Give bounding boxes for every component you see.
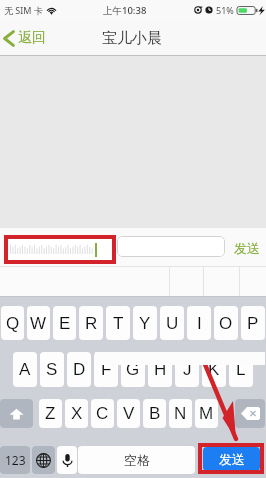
button[interactable]: 空格 bbox=[78, 446, 195, 474]
staticText: H bbox=[154, 360, 167, 379]
staticText: B bbox=[149, 404, 161, 423]
button[interactable]: D bbox=[67, 352, 91, 387]
button[interactable]: G bbox=[121, 352, 145, 387]
staticText: V bbox=[123, 404, 135, 423]
button[interactable]: B bbox=[143, 399, 166, 428]
staticText: 51% bbox=[216, 4, 234, 16]
button[interactable] bbox=[4, 235, 116, 264]
button[interactable]: U bbox=[160, 306, 184, 340]
button[interactable]: Y bbox=[133, 306, 157, 340]
button[interactable]: T bbox=[106, 306, 130, 340]
button[interactable]: R bbox=[79, 306, 103, 340]
button[interactable]: I bbox=[187, 306, 211, 340]
staticText: N bbox=[174, 404, 187, 423]
staticText: R bbox=[85, 314, 98, 333]
staticText: A bbox=[19, 360, 31, 379]
button[interactable]: 123 bbox=[0, 446, 30, 474]
staticText: J bbox=[183, 360, 192, 379]
button[interactable]: F bbox=[94, 352, 118, 387]
button[interactable]: L bbox=[229, 352, 253, 387]
button[interactable]: A bbox=[13, 352, 37, 387]
button[interactable]: Z bbox=[39, 399, 62, 428]
button[interactable]: 发送 bbox=[203, 447, 260, 471]
button[interactable]: P bbox=[241, 306, 265, 340]
button[interactable]: O bbox=[214, 306, 238, 340]
staticText: 发送 bbox=[234, 240, 260, 256]
staticText: 无 SIM 卡 bbox=[4, 4, 43, 16]
staticText: S bbox=[46, 360, 58, 379]
staticText: 空格 bbox=[124, 452, 150, 468]
button[interactable]: W bbox=[27, 306, 50, 340]
staticText: T bbox=[113, 314, 124, 333]
staticText: Y bbox=[139, 314, 151, 333]
staticText: W bbox=[30, 314, 47, 333]
staticText: K bbox=[208, 360, 220, 379]
staticText: 返回 bbox=[18, 29, 46, 47]
staticText: Q bbox=[6, 314, 20, 333]
staticText: F bbox=[101, 360, 112, 379]
staticText: M bbox=[199, 404, 214, 423]
button[interactable]: S bbox=[40, 352, 64, 387]
staticText: C bbox=[96, 404, 109, 423]
staticText: L bbox=[236, 360, 246, 379]
button[interactable]: Backspace bbox=[235, 399, 265, 428]
button[interactable]: 返回 bbox=[0, 25, 54, 51]
staticText: U bbox=[166, 314, 179, 333]
button[interactable]: Change keyboard bbox=[32, 446, 55, 474]
button[interactable]: J bbox=[175, 352, 199, 387]
staticText: P bbox=[247, 314, 259, 333]
staticText: D bbox=[73, 360, 86, 379]
staticText: O bbox=[219, 314, 233, 333]
button[interactable]: Q bbox=[1, 306, 24, 340]
button[interactable]: X bbox=[65, 399, 88, 428]
staticText: 宝儿小晨 bbox=[102, 29, 162, 48]
button[interactable] bbox=[117, 236, 225, 257]
button[interactable]: E bbox=[53, 306, 76, 340]
button[interactable]: V bbox=[117, 399, 140, 428]
button[interactable]: H bbox=[148, 352, 172, 387]
staticText: G bbox=[126, 360, 140, 379]
staticText: I bbox=[197, 314, 202, 333]
button[interactable]: N bbox=[169, 399, 192, 428]
staticText: E bbox=[59, 314, 71, 333]
button[interactable]: M bbox=[195, 399, 218, 428]
staticText: X bbox=[71, 404, 83, 423]
button[interactable]: Shift bbox=[0, 399, 33, 428]
staticText: Z bbox=[45, 404, 56, 423]
button[interactable]: Dictation bbox=[57, 446, 77, 474]
button[interactable]: K bbox=[202, 352, 226, 387]
staticText: 上午10:38 bbox=[103, 4, 147, 17]
button[interactable]: 发送 bbox=[229, 228, 265, 267]
staticText: 123 bbox=[5, 452, 26, 468]
staticText: 发送 bbox=[219, 451, 245, 467]
button[interactable]: C bbox=[91, 399, 114, 428]
